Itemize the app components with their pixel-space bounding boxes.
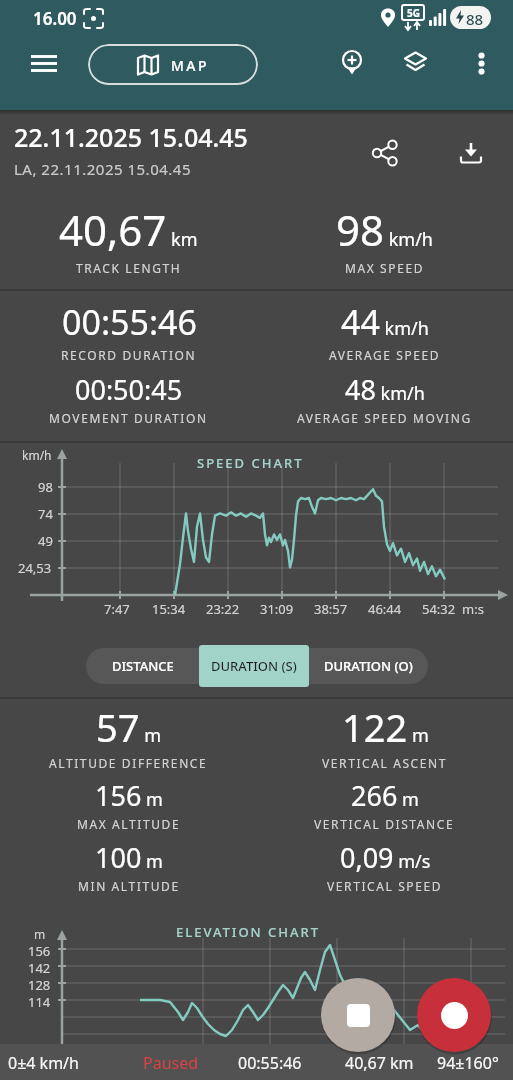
staticText: VERTICAL SPEED — [327, 878, 443, 894]
staticText: ELEVATION CHART — [176, 923, 321, 941]
button[interactable] — [321, 978, 395, 1052]
staticText: AVERAGE SPEED MOVING — [297, 410, 472, 426]
staticText: 114 — [28, 993, 51, 1011]
staticText: SPEED CHART — [197, 454, 304, 472]
staticText: 31:09 — [260, 600, 294, 618]
staticText: 0,09 m/s — [340, 839, 431, 876]
staticText: 57 m — [96, 701, 161, 753]
staticText: MAX SPEED — [345, 260, 425, 276]
staticText: 156 m — [95, 777, 163, 814]
staticText: 44 km/h — [341, 299, 429, 345]
staticText: 98 km/h — [336, 201, 433, 258]
staticText: 98 — [38, 478, 53, 496]
staticText: 16.00 — [33, 7, 77, 30]
staticText: LA, 22.11.2025 15.04.45 — [14, 159, 191, 179]
staticText: m — [34, 926, 46, 942]
staticText: RECORD DURATION — [61, 347, 197, 363]
button[interactable] — [475, 52, 489, 76]
staticText: 40,67 km — [59, 201, 198, 258]
button[interactable] — [403, 51, 428, 74]
button[interactable]: MAP — [88, 44, 258, 85]
button[interactable] — [417, 978, 491, 1052]
staticText: 122 m — [342, 701, 429, 753]
staticText: m:s — [462, 600, 484, 618]
staticText: 15:34 — [152, 600, 186, 618]
staticText: MAX ALTITUDE — [77, 816, 181, 832]
button[interactable] — [339, 50, 365, 76]
staticText: Paused — [143, 1052, 199, 1074]
button[interactable] — [372, 140, 398, 166]
staticText: 128 — [28, 976, 51, 994]
staticText: km/h — [22, 447, 52, 463]
staticText: 0±4 km/h — [8, 1052, 79, 1074]
staticText: 142 — [28, 959, 51, 977]
staticText: 38:57 — [314, 600, 348, 618]
staticText: 00:50:45 — [75, 371, 183, 408]
staticText: DURATION (S) — [211, 657, 297, 675]
staticText: AVERAGE SPEED — [329, 347, 441, 363]
staticText: 49 — [38, 532, 53, 550]
staticText: 40,67 km — [345, 1052, 414, 1074]
staticText: 100 m — [95, 839, 163, 876]
staticText: 23:22 — [206, 600, 240, 618]
staticText: 156 — [28, 942, 51, 960]
staticText: 00:55:46 — [62, 299, 197, 345]
staticText: 5G — [407, 6, 420, 20]
staticText: 88 — [466, 9, 484, 29]
staticText: 266 m — [351, 777, 419, 814]
staticText: DURATION (O) — [324, 657, 413, 675]
staticText: 24,53 — [18, 559, 52, 577]
staticText: 74 — [38, 505, 53, 523]
button[interactable] — [458, 141, 484, 167]
staticText: 22.11.2025 15.04.45 — [14, 120, 248, 154]
staticText: VERTICAL ASCENT — [322, 755, 448, 771]
staticText: MOVEMENT DURATION — [49, 410, 208, 426]
staticText: 48 km/h — [345, 371, 425, 408]
button[interactable]: DISTANCE — [86, 648, 199, 684]
staticText: MIN ALTITUDE — [78, 878, 180, 894]
staticText: VERTICAL DISTANCE — [314, 816, 455, 832]
staticText: 00:55:46 — [238, 1052, 302, 1074]
staticText: 7:47 — [104, 600, 130, 618]
button[interactable]: DURATION (O) — [309, 648, 428, 684]
staticText: 46:44 — [368, 600, 402, 618]
staticText: ALTITUDE DIFFERENCE — [49, 755, 208, 771]
staticText: MAP — [171, 56, 210, 75]
staticText: DISTANCE — [112, 657, 174, 675]
staticText: 54:32 — [422, 600, 456, 618]
button[interactable] — [31, 55, 57, 72]
staticText: TRACK LENGTH — [76, 260, 182, 276]
button[interactable]: DURATION (S) — [199, 645, 309, 687]
staticText: 94±160° — [437, 1052, 499, 1074]
